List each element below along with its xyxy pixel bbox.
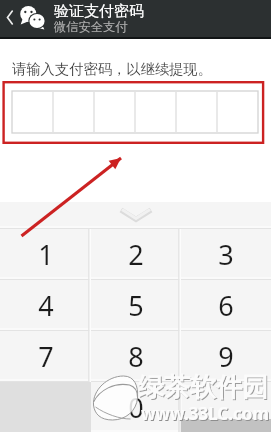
button[interactable]: 8 [91, 331, 181, 382]
staticText: 0 [128, 389, 144, 426]
staticText: 绿茶软件园 [138, 371, 268, 404]
button[interactable]: 0 [91, 382, 181, 432]
button[interactable]: Delete [181, 382, 271, 432]
button[interactable]: 7 [0, 331, 91, 382]
staticText: 9 [218, 338, 234, 375]
button[interactable]: 9 [181, 331, 271, 382]
button[interactable]: 6 [181, 280, 271, 331]
staticText: www.33LC.com [142, 403, 271, 426]
button[interactable]: Hide keyboard [114, 202, 158, 229]
staticText: 请输入支付密码，以继续提现。 [12, 60, 213, 78]
button[interactable]: Back [0, 0, 20, 37]
staticText: 6 [218, 287, 234, 324]
staticText: 2 [128, 236, 144, 273]
staticText: 4 [38, 287, 54, 324]
button[interactable]: 2 [91, 229, 181, 280]
staticText: 5 [128, 287, 144, 324]
button[interactable]: 4 [0, 280, 91, 331]
button[interactable]: 5 [91, 280, 181, 331]
staticText: 绿茶软件园 [139, 372, 269, 405]
button[interactable]: 1 [0, 229, 91, 280]
staticText: www.33LC.com [141, 402, 270, 425]
staticText: 验证支付密码 [54, 2, 144, 21]
staticText: 微信安全支付 [54, 19, 128, 34]
staticText: 3 [218, 236, 234, 273]
button[interactable]: 3 [181, 229, 271, 280]
staticText: 1 [38, 236, 54, 273]
staticText: 7 [38, 338, 54, 375]
staticText: 8 [128, 338, 144, 375]
